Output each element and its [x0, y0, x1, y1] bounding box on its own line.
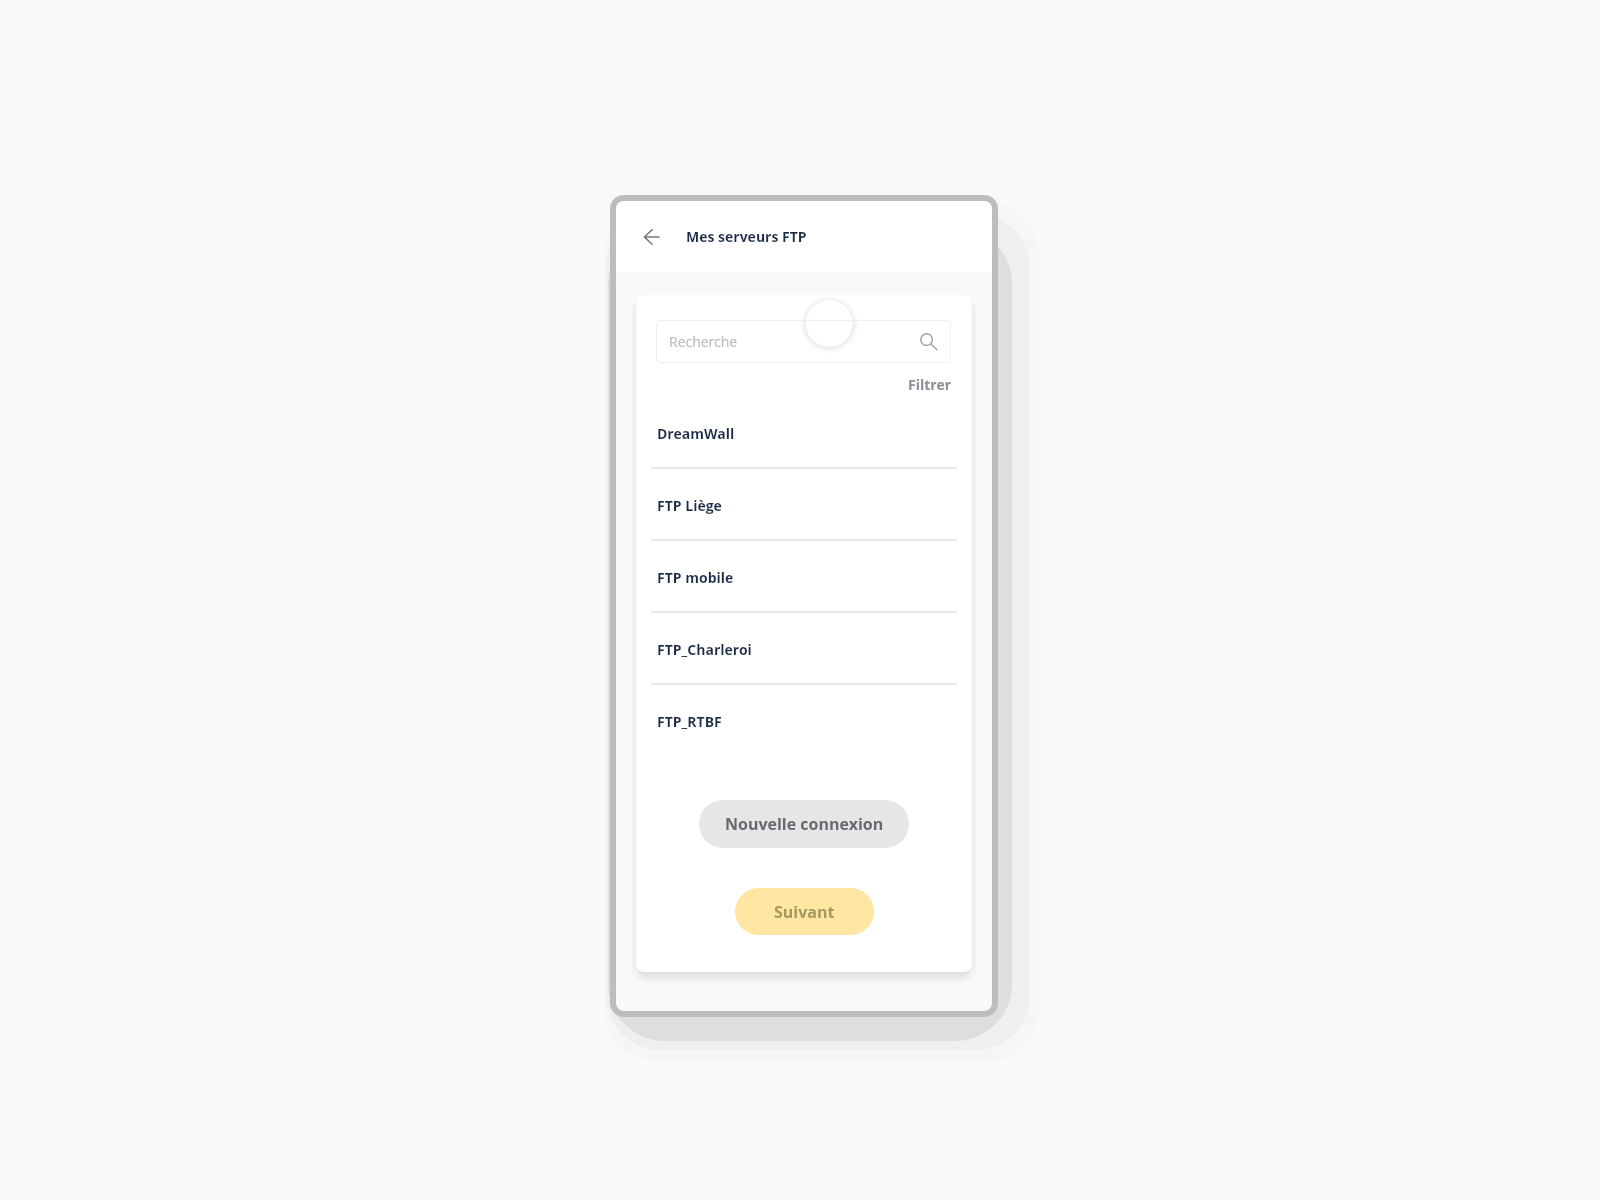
staticText: Mes serveurs FTP — [686, 227, 807, 246]
staticText: FTP_Charleroi — [657, 640, 752, 659]
button[interactable]: Filtrer — [906, 375, 954, 394]
button[interactable]: FTP Liège — [636, 469, 972, 541]
staticText: Nouvelle connexion — [725, 813, 884, 835]
button[interactable]: FTP mobile — [636, 541, 972, 613]
button[interactable]: FTP_RTBF — [636, 685, 972, 757]
staticText: Recherche — [669, 332, 738, 351]
staticText: Suivant — [774, 901, 835, 923]
button[interactable]: Nouvelle connexion — [699, 800, 909, 848]
button[interactable]: DreamWall — [636, 397, 972, 469]
staticText: FTP mobile — [657, 568, 734, 587]
staticText: FTP Liège — [657, 496, 722, 515]
button[interactable]: Recherche — [656, 320, 951, 363]
staticText: FTP_RTBF — [657, 712, 722, 731]
staticText: DreamWall — [657, 424, 735, 443]
button[interactable]: Back — [633, 218, 671, 256]
staticText: Filtrer — [908, 375, 952, 394]
button[interactable]: FTP_Charleroi — [636, 613, 972, 685]
button[interactable]: Suivant — [735, 888, 874, 935]
